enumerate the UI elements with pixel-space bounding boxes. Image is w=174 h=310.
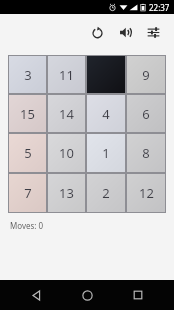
staticText: 6	[142, 105, 150, 123]
staticText: 13	[59, 184, 74, 202]
button[interactable]: 5	[9, 134, 46, 172]
staticText: 22:37	[149, 2, 170, 13]
staticText: 3	[24, 66, 32, 84]
button[interactable]: 2	[87, 174, 125, 212]
button[interactable]: 8	[127, 134, 165, 172]
staticText: 14	[59, 105, 74, 123]
staticText: 15	[20, 105, 35, 123]
button[interactable]: 10	[48, 134, 85, 172]
staticText: 12	[139, 184, 154, 202]
button[interactable]: 6	[127, 95, 165, 132]
button[interactable]: Restart	[84, 19, 110, 45]
button[interactable]: 9	[127, 56, 165, 93]
staticText: 9	[142, 66, 150, 84]
staticText: Moves: 0	[10, 220, 44, 231]
button[interactable]: 12	[127, 174, 165, 212]
button[interactable]: 15	[9, 95, 46, 132]
staticText: 4	[102, 105, 110, 123]
button[interactable]: 7	[9, 174, 46, 212]
staticText: 1	[102, 144, 110, 162]
button[interactable]	[87, 56, 125, 93]
button[interactable]: 4	[87, 95, 125, 132]
button[interactable]: 11	[48, 56, 85, 93]
staticText: 2	[102, 184, 110, 202]
staticText: 10	[59, 144, 74, 162]
button[interactable]: 13	[48, 174, 85, 212]
staticText: 8	[142, 144, 150, 162]
staticText: 5	[24, 144, 32, 162]
staticText: 11	[59, 66, 74, 84]
button[interactable]: Settings	[140, 19, 166, 45]
button[interactable]: Home	[72, 280, 102, 310]
button[interactable]: Recents	[123, 280, 153, 310]
button[interactable]: 1	[87, 134, 125, 172]
staticText: 7	[24, 184, 32, 202]
button[interactable]: Sound	[112, 19, 138, 45]
button[interactable]: Back	[21, 280, 51, 310]
button[interactable]: 14	[48, 95, 85, 132]
button[interactable]: 3	[9, 56, 46, 93]
